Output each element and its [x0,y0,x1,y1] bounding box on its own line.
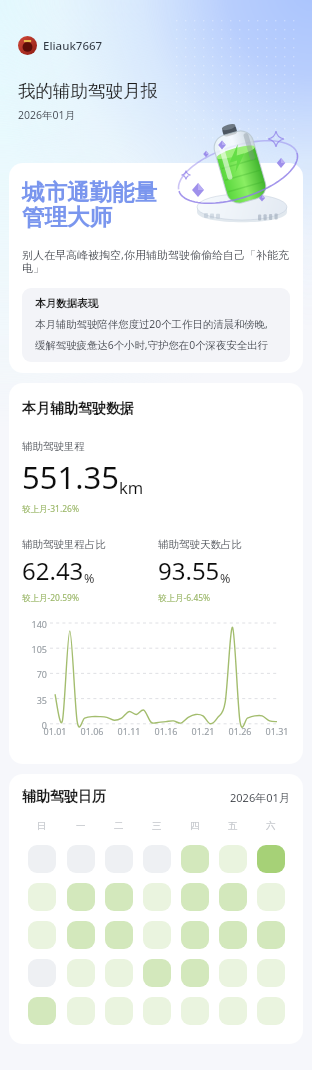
button[interactable] [257,997,285,1025]
staticText: 62.43 [22,554,84,587]
staticText: 0 [22,719,47,731]
staticText: 551.35 [22,456,119,498]
button[interactable] [257,921,285,949]
button[interactable] [28,959,56,987]
button[interactable] [67,845,95,873]
staticText: 本月辅助驾驶陪伴您度过20个工作日的清晨和傍晚, 缓解驾驶疲惫达6个小时,守护您… [35,317,268,353]
button[interactable] [219,845,247,873]
staticText: 93.55 [158,554,220,587]
staticText: 本月辅助驾驶数据 [22,400,134,418]
staticText: 辅助驾驶里程 [22,440,85,453]
staticText: 01.06 [76,725,108,737]
button[interactable] [181,845,209,873]
staticText: 二 [114,820,124,832]
button[interactable] [219,997,247,1025]
staticText: 一 [76,820,86,832]
staticText: km [119,476,144,498]
button[interactable] [105,845,133,873]
staticText: 2026年01月 [18,108,76,122]
staticText: 我的辅助驾驶月报 [18,80,158,102]
staticText: 辅助驾驶里程占比 [22,538,106,551]
button[interactable] [28,997,56,1025]
staticText: 01.01 [39,725,71,737]
staticText: 01.16 [150,725,182,737]
staticText: 辅助驾驶天数占比 [158,538,242,551]
staticText: 105 [22,643,47,655]
staticText: 01.26 [224,725,256,737]
staticText: 01.31 [261,725,293,737]
button[interactable] [143,997,171,1025]
button[interactable] [67,997,95,1025]
button[interactable] [219,959,247,987]
staticText: 三 [152,820,162,832]
staticText: 辅助驾驶日历 [22,788,106,806]
staticText: 五 [228,820,238,832]
staticText: 别人在早高峰被掏空,你用辅助驾驶偷偷给自己「补能充电」 [22,247,290,275]
staticText: % [84,570,95,587]
button[interactable]: Eliauk7667 [18,36,103,55]
button[interactable] [181,921,209,949]
staticText: 2026年01月 [230,790,290,805]
button[interactable] [28,845,56,873]
staticText: 较上月-20.59% [22,592,80,604]
staticText: 六 [266,820,276,832]
button[interactable] [219,921,247,949]
button[interactable] [143,883,171,911]
staticText: 日 [37,820,47,832]
button[interactable] [257,845,285,873]
staticText: 01.11 [113,725,145,737]
staticText: % [220,570,231,587]
button[interactable] [181,959,209,987]
button[interactable] [67,921,95,949]
button[interactable] [105,997,133,1025]
staticText: 70 [22,668,47,680]
button[interactable] [28,921,56,949]
button[interactable] [28,883,56,911]
button[interactable] [67,883,95,911]
button[interactable] [181,883,209,911]
staticText: 35 [22,694,47,706]
staticText: 01.21 [187,725,219,737]
button[interactable] [105,959,133,987]
button[interactable] [143,959,171,987]
button[interactable] [67,959,95,987]
staticText: 较上月-31.26% [22,503,80,515]
staticText: 城市通勤能量 管理大师 [22,178,157,231]
staticText: Eliauk7667 [43,38,103,54]
button[interactable] [105,883,133,911]
button[interactable] [143,921,171,949]
staticText: 较上月-6.45% [158,592,211,604]
button[interactable] [105,921,133,949]
button[interactable] [181,997,209,1025]
staticText: 四 [190,820,200,832]
staticText: 本月数据表现 [35,297,98,310]
button[interactable] [219,883,247,911]
button[interactable] [257,883,285,911]
button[interactable] [143,845,171,873]
button[interactable] [257,959,285,987]
staticText: 140 [22,618,47,630]
